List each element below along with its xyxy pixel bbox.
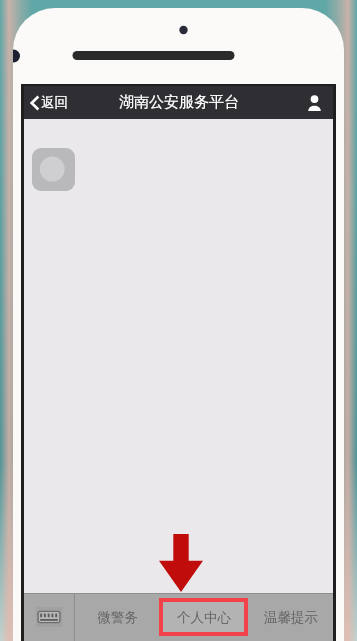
staticText: 湖南公安服务平台 xyxy=(119,93,239,112)
staticText: 个人中心 xyxy=(177,609,231,626)
staticText: 返回 xyxy=(41,94,68,111)
button[interactable]: 个人中心 xyxy=(163,602,244,632)
button[interactable]: 微警务 xyxy=(75,593,159,641)
staticText: 微警务 xyxy=(97,609,138,626)
staticText: 温馨提示 xyxy=(264,609,318,626)
button[interactable]: Keyboard xyxy=(24,593,74,641)
button[interactable]: 温馨提示 xyxy=(248,593,333,641)
button[interactable]: 返回 xyxy=(24,86,78,119)
button[interactable]: Profile xyxy=(296,86,333,119)
